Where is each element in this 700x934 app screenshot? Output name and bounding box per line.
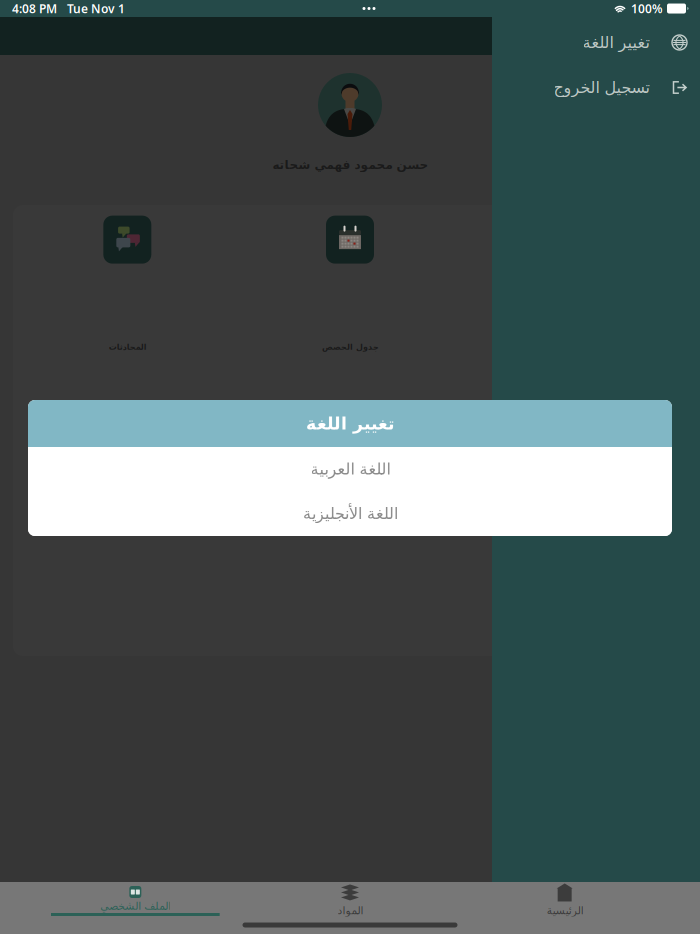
staticText: جدول الحصص [321, 342, 378, 352]
button[interactable]: اللغة العربية [28, 447, 672, 491]
staticText: حسن محمود فهمي شحاته [272, 158, 428, 172]
button[interactable]: تسجيل الخروج [492, 80, 700, 95]
button[interactable]: تغيير اللغة [492, 35, 700, 50]
button[interactable]: المواد [243, 882, 457, 916]
staticText: المواد [337, 904, 363, 916]
staticText: الملف الشخصي [100, 900, 171, 912]
staticText: الرئيسية [546, 904, 583, 916]
button[interactable]: الملف الشخصي [28, 882, 243, 916]
staticText: اللغة الأنجليزية [302, 504, 397, 523]
staticText: 4:08 PM [12, 0, 57, 16]
staticText: اللغة العربية [310, 460, 390, 478]
button[interactable]: اللغة الأنجليزية [28, 491, 672, 536]
staticText: المحادثات [108, 342, 146, 352]
button[interactable]: المحادثات [16, 216, 239, 352]
staticText: تسجيل الخروج [553, 78, 649, 97]
staticText: Tue Nov 1 [67, 0, 125, 16]
staticText: تغيير اللغة [582, 33, 649, 52]
button[interactable]: الرئيسية [457, 882, 672, 916]
staticText: تغيير اللغة [305, 414, 394, 433]
staticText: 100% [631, 0, 663, 16]
button[interactable]: جدول الحصص [239, 216, 461, 352]
